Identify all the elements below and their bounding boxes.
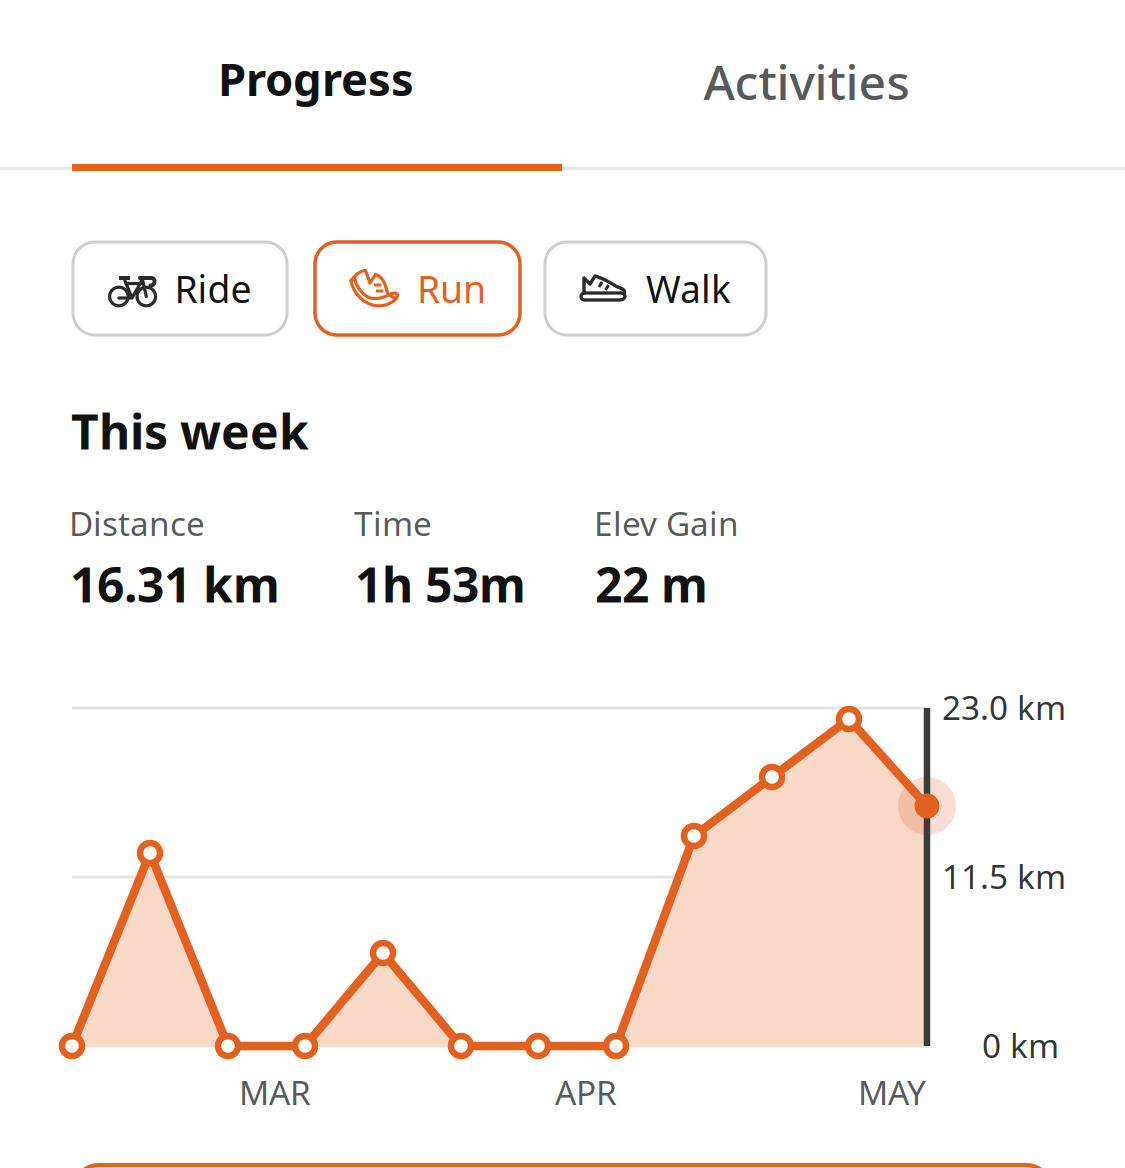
staticText: Walk xyxy=(646,264,731,313)
staticText: Activities xyxy=(703,50,909,113)
staticText: 22 m xyxy=(595,552,708,616)
staticText: 11.5 km xyxy=(942,854,1066,898)
button[interactable]: Run xyxy=(315,242,520,335)
staticText: MAY xyxy=(858,1070,926,1114)
staticText: 0 km xyxy=(982,1023,1059,1067)
button[interactable]: Activities xyxy=(562,0,1125,171)
staticText: Run xyxy=(417,264,486,313)
staticText: This week xyxy=(71,399,309,463)
staticText: Progress xyxy=(218,48,414,109)
button[interactable]: Walk xyxy=(545,242,766,335)
staticText: Elev Gain xyxy=(594,501,739,545)
staticText: 16.31 km xyxy=(70,552,280,616)
staticText: 23.0 km xyxy=(942,685,1066,729)
staticText: MAR xyxy=(239,1070,311,1114)
button[interactable]: Progress xyxy=(0,0,562,171)
staticText: APR xyxy=(555,1070,617,1114)
button[interactable]: Ride xyxy=(73,242,287,335)
staticText: Distance xyxy=(69,501,205,545)
staticText: Time xyxy=(354,501,432,545)
staticText: 1h 53m xyxy=(355,552,526,616)
staticText: Ride xyxy=(174,264,251,313)
